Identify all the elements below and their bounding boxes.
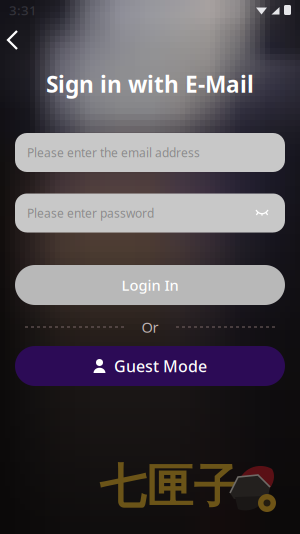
button[interactable]: Guest Mode	[15, 346, 285, 386]
button[interactable]: Back	[2, 21, 40, 59]
staticText: Login In	[121, 275, 178, 295]
staticText: Sign in with E-Mail	[46, 69, 254, 99]
button[interactable]: Show password	[251, 202, 273, 224]
staticText: 七匣子	[99, 458, 240, 516]
staticText: Or	[141, 317, 158, 337]
staticText: Guest Mode	[114, 355, 207, 377]
staticText: Please enter password	[27, 205, 154, 221]
staticText: 3:31	[9, 1, 37, 19]
button[interactable]: Login In	[15, 265, 285, 305]
staticText: Please enter the email address	[27, 144, 200, 160]
